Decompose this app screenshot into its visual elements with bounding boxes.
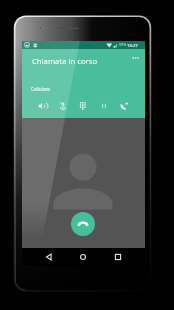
staticText: 59% xyxy=(119,42,127,47)
staticText: Cellulare xyxy=(31,86,50,92)
staticText: 15:27 xyxy=(127,42,138,48)
button[interactable]: Mute xyxy=(55,98,71,114)
button[interactable]: Dialpad xyxy=(75,98,91,114)
button[interactable]: More options xyxy=(127,52,143,64)
button[interactable]: Add call xyxy=(116,98,132,114)
button[interactable]: Hold xyxy=(96,98,112,114)
button[interactable]: Recent apps xyxy=(110,249,126,265)
button[interactable]: End call xyxy=(71,212,95,236)
staticText: Chiamata in corso xyxy=(32,56,98,66)
button[interactable]: Back xyxy=(41,249,57,265)
button[interactable]: Home xyxy=(75,249,91,265)
button[interactable]: Speaker xyxy=(34,98,50,114)
